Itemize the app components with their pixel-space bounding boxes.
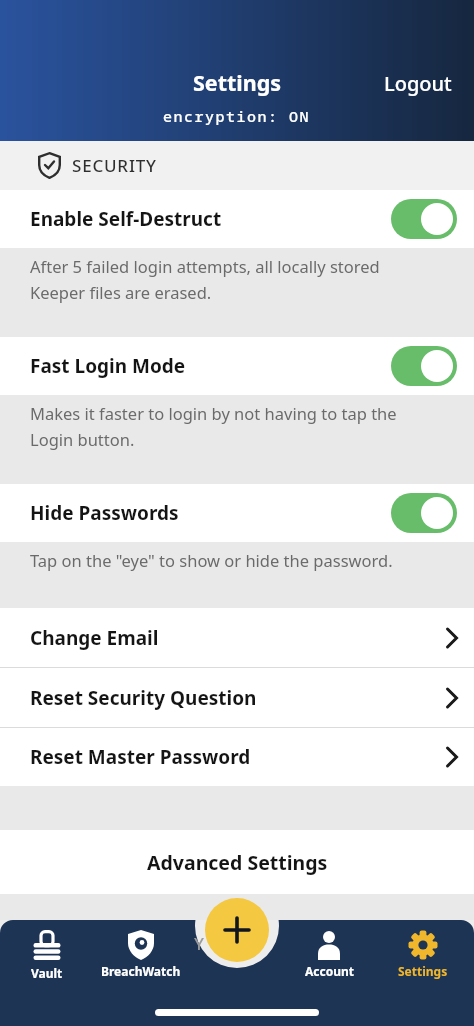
staticText: After 5 failed login attempts, all local… (30, 255, 380, 304)
staticText: Vault (31, 965, 63, 981)
button[interactable]: Reset Security Question (0, 668, 474, 728)
button[interactable]: Change Email (0, 608, 474, 668)
staticText: Y (194, 932, 204, 955)
staticText: BreachWatch (101, 963, 181, 979)
staticText: Enable Self-Destruct (30, 206, 391, 232)
staticText: Settings (398, 963, 448, 979)
button[interactable] (205, 898, 269, 962)
staticText: SECURITY (72, 154, 157, 177)
staticText: Reset Security Question (30, 685, 446, 711)
button[interactable]: Settings (376, 930, 470, 979)
staticText: Tap on the "eye" to show or hide the pas… (30, 549, 393, 571)
staticText: Settings (193, 68, 282, 97)
button[interactable]: Reset Master Password (0, 728, 474, 786)
button[interactable]: Vault (0, 930, 94, 981)
staticText: Fast Login Mode (30, 353, 391, 379)
staticText: encryption: ON (163, 106, 311, 126)
staticText: Makes it faster to login by not having t… (30, 402, 397, 451)
staticText: Change Email (30, 625, 446, 651)
button[interactable]: Account (282, 930, 376, 979)
button[interactable]: Advanced Settings (0, 830, 474, 894)
staticText: Advanced Settings (147, 849, 328, 876)
button[interactable]: Fast Login Mode (0, 337, 474, 395)
button[interactable]: Logout (384, 70, 452, 97)
button[interactable]: Enable Self-Destruct (0, 190, 474, 248)
staticText: Account (305, 963, 354, 979)
button[interactable]: BreachWatch (94, 930, 188, 979)
staticText: Logout (384, 70, 452, 97)
staticText: Reset Master Password (30, 744, 446, 770)
staticText: Hide Passwords (30, 500, 391, 526)
button[interactable]: Hide Passwords (0, 484, 474, 542)
